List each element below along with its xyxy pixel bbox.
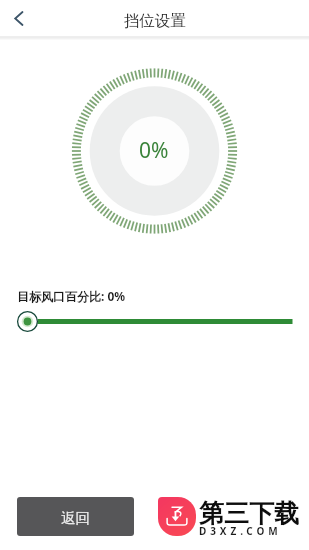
button[interactable]: 返回 — [17, 497, 134, 536]
button[interactable]: Back — [4, 4, 33, 33]
staticText: 挡位设置 — [124, 11, 186, 31]
staticText: 返回 — [61, 509, 90, 527]
staticText: 第三下载 — [199, 498, 299, 529]
staticText: D3XZ.COM — [199, 524, 282, 538]
staticText: 0% — [139, 136, 169, 165]
staticText: 目标风口百分比: 0% — [17, 288, 126, 304]
button[interactable]: Target vent percentage slider — [0, 308, 309, 336]
